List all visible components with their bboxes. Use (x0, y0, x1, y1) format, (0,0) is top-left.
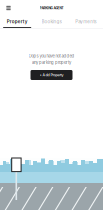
button[interactable]: Bookings (34, 16, 69, 28)
staticText: Bookings (41, 19, 61, 24)
staticText: PARKING AGENT (39, 6, 63, 10)
staticText: Payments (75, 19, 96, 24)
staticText: Property (7, 19, 28, 24)
button[interactable]: Menu (3, 2, 14, 13)
button[interactable]: Payments (69, 16, 103, 28)
button[interactable]: + Add Property (30, 70, 72, 80)
staticText: + Add Property (39, 73, 63, 77)
button[interactable]: Property (0, 16, 34, 28)
staticText: any parking property (32, 60, 71, 65)
staticText: Oops you have not added (28, 54, 74, 59)
